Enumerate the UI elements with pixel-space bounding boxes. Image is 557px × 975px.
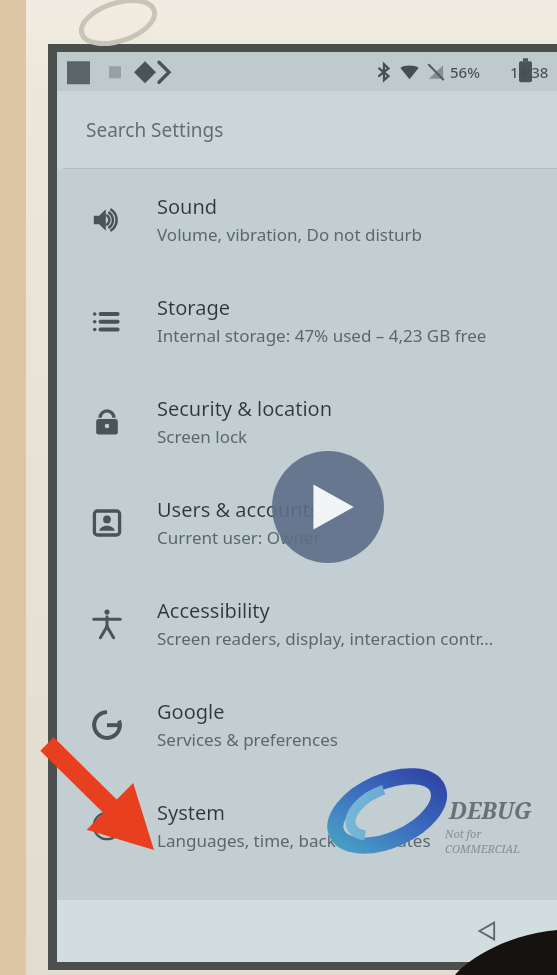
button[interactable]: Security & location <box>57 371 557 472</box>
button[interactable]: Accessibility <box>57 573 557 674</box>
staticText: Services & preferences <box>157 728 338 751</box>
staticText: Users & accounts <box>157 496 320 523</box>
staticText: Current user: Owner <box>157 526 321 549</box>
staticText: Accessibility <box>157 597 270 624</box>
staticText: Volume, vibration, Do not disturb <box>157 223 423 246</box>
staticText: Search Settings <box>86 117 224 143</box>
staticText: 56% <box>450 62 480 82</box>
button[interactable]: Google <box>57 674 557 775</box>
staticText: DEBUG <box>449 794 533 825</box>
button[interactable]: Back <box>467 911 507 951</box>
staticText: 14:38 <box>510 62 549 82</box>
staticText: Google <box>157 698 225 725</box>
staticText: Languages, time, backup, updates <box>157 829 431 852</box>
staticText: Internal storage: 47% used – 4,23 GB fre… <box>157 324 487 347</box>
staticText: Security & location <box>157 395 333 422</box>
button[interactable]: System <box>57 775 557 876</box>
button[interactable]: Search Settings <box>57 91 557 169</box>
button[interactable]: Storage <box>57 270 557 371</box>
staticText: Screen lock <box>157 425 248 448</box>
staticText: Sound <box>157 193 218 220</box>
button[interactable]: Users & accounts <box>57 472 557 573</box>
staticText: System <box>157 799 225 826</box>
staticText: Screen readers, display, interaction con… <box>157 627 494 650</box>
button[interactable]: Sound <box>57 169 557 270</box>
staticText: Storage <box>157 294 230 321</box>
staticText: Not for COMMERCIAL <box>445 826 557 856</box>
